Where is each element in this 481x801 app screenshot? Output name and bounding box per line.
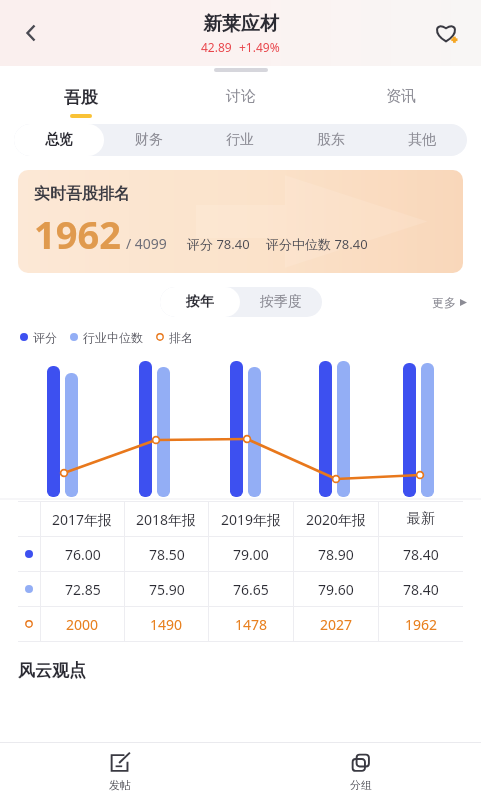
staticText: 财务 (135, 131, 163, 149)
staticText: 2020年报 (306, 510, 367, 529)
staticText: 78.40 (403, 580, 439, 599)
staticText: 评分中位数 78.40 (266, 235, 368, 253)
staticText: 新莱应材 (203, 12, 279, 36)
button[interactable]: 财务 (104, 124, 194, 156)
staticText: 股东 (317, 131, 345, 149)
staticText: 2017年报 (52, 510, 113, 529)
staticText: 76.65 (233, 580, 269, 599)
staticText: 2019年报 (221, 510, 282, 529)
button[interactable]: 总览 (14, 124, 104, 156)
button[interactable]: 分组 (240, 743, 481, 801)
staticText: 排名 (169, 330, 193, 345)
staticText: 75.90 (149, 580, 185, 599)
button[interactable]: 发帖 (0, 743, 240, 801)
staticText: 78.50 (149, 545, 185, 564)
staticText: 最新 (407, 510, 435, 528)
staticText: 讨论 (226, 87, 256, 106)
staticText: 2027 (320, 615, 353, 634)
staticText: 总览 (45, 131, 73, 149)
staticText: 行业中位数 (83, 330, 143, 345)
staticText: 吾股 (64, 87, 98, 108)
staticText: 评分 (33, 330, 57, 345)
staticText: 资讯 (386, 87, 416, 106)
staticText: +1.49% (239, 39, 280, 55)
button[interactable]: 按年 (160, 287, 240, 317)
button[interactable]: 其他 (376, 124, 467, 156)
button[interactable]: 讨论 (161, 87, 321, 116)
staticText: 78.90 (318, 545, 354, 564)
button[interactable]: 更多 (432, 295, 467, 310)
staticText: 1490 (150, 615, 183, 634)
staticText: 2000 (66, 615, 99, 634)
staticText: 评分 78.40 (187, 235, 250, 253)
staticText: 行业 (226, 131, 254, 149)
staticText: 79.00 (233, 545, 269, 564)
staticText: / 4099 (126, 234, 167, 253)
button[interactable]: 行业 (194, 124, 285, 156)
staticText: 实时吾股排名 (34, 184, 130, 204)
staticText: 79.60 (318, 580, 354, 599)
staticText: 更多 (432, 295, 456, 310)
staticText: 按季度 (260, 293, 302, 311)
staticText: 分组 (350, 778, 372, 792)
staticText: 1478 (235, 615, 268, 634)
button[interactable]: 资讯 (321, 87, 481, 116)
staticText: 78.40 (403, 545, 439, 564)
button[interactable]: Add to watchlist (423, 10, 469, 56)
staticText: 风云观点 (18, 660, 86, 681)
button[interactable]: 吾股 (0, 87, 161, 118)
staticText: 76.00 (65, 545, 101, 564)
staticText: 发帖 (109, 778, 131, 792)
button[interactable]: 股东 (285, 124, 376, 156)
staticText: 2018年报 (136, 510, 197, 529)
staticText: 其他 (408, 131, 436, 149)
button[interactable]: 按季度 (240, 287, 322, 317)
staticText: 42.89 (201, 39, 232, 55)
staticText: 1962 (34, 208, 121, 260)
button[interactable]: Back (8, 10, 54, 56)
staticText: 按年 (186, 293, 214, 311)
staticText: 1962 (405, 615, 438, 634)
staticText: 72.85 (65, 580, 101, 599)
